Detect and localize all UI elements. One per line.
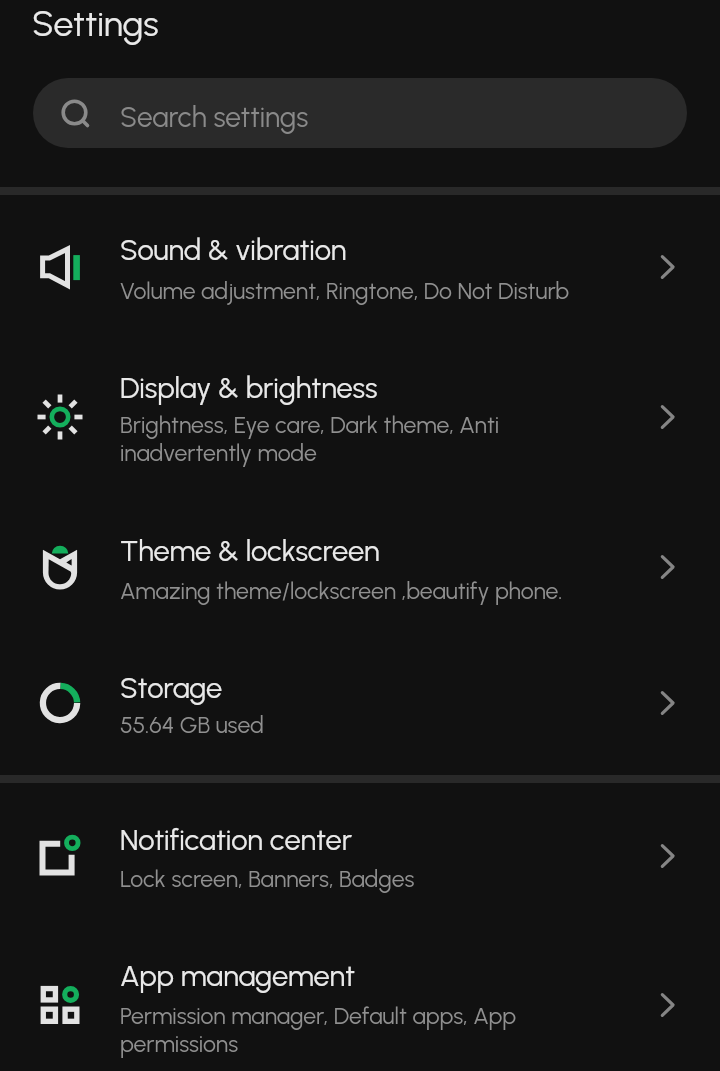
button[interactable]: Search: [33, 78, 687, 148]
staticText: Search settings: [120, 100, 309, 134]
staticText: Sound & vibration: [120, 232, 347, 267]
staticText: Display & brightness: [120, 370, 378, 405]
other: Open Theme & lockscreen: [652, 551, 684, 583]
other: Open Notification center: [652, 840, 684, 872]
staticText: Settings: [32, 2, 159, 45]
staticText: 55.64 GB used: [120, 711, 586, 739]
staticText: Permission manager, Default apps, App pe…: [120, 1002, 586, 1058]
button[interactable]: Notification center: [0, 783, 720, 919]
staticText: Storage: [120, 670, 223, 705]
other: Open Storage: [652, 687, 684, 719]
other: Search: [61, 95, 97, 131]
button[interactable]: Storage: [0, 633, 720, 775]
button[interactable]: App management: [0, 919, 720, 1071]
other: Open Sound & vibration: [652, 251, 684, 283]
staticText: Volume adjustment, Ringtone, Do Not Dist…: [120, 277, 586, 305]
other: Open Display & brightness: [652, 401, 684, 433]
button[interactable]: Theme & lockscreen: [0, 495, 720, 633]
staticText: Theme & lockscreen: [120, 533, 380, 568]
button[interactable]: Sound & vibration: [0, 195, 720, 332]
staticText: Lock screen, Banners, Badges: [120, 865, 586, 893]
staticText: App management: [120, 958, 356, 993]
staticText: Brightness, Eye care, Dark theme, Anti i…: [120, 411, 586, 467]
staticText: Notification center: [120, 822, 353, 857]
other: Open App management: [652, 989, 684, 1021]
button[interactable]: Display & brightness: [0, 332, 720, 495]
staticText: Amazing theme/lockscreen ,beautify phone…: [120, 577, 586, 605]
